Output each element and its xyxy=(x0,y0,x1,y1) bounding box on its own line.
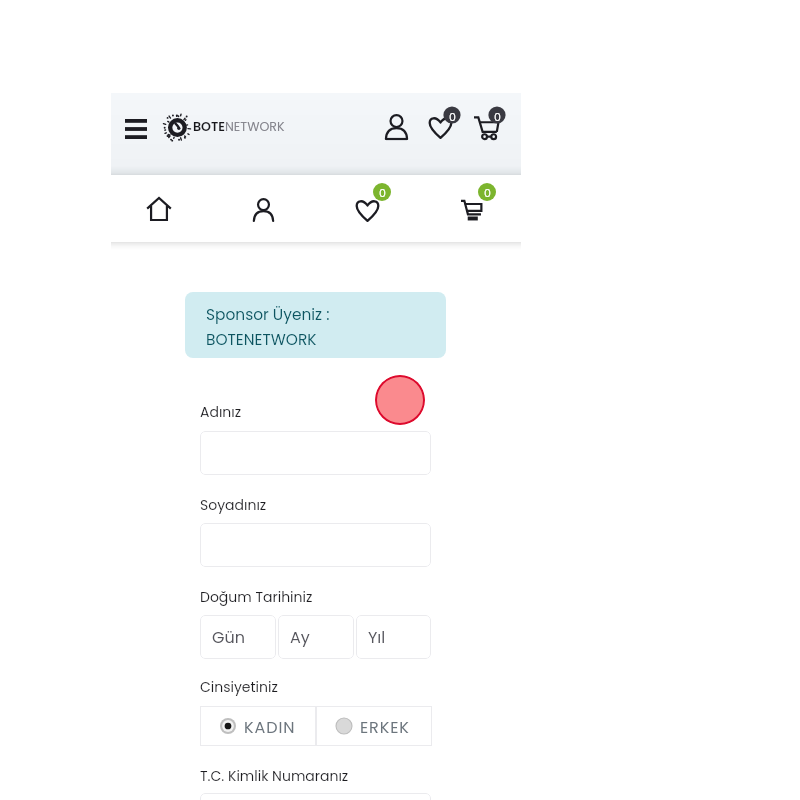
button[interactable] xyxy=(200,431,431,475)
button[interactable]: Favourites xyxy=(342,180,400,228)
staticText: 0 xyxy=(448,109,457,124)
staticText: NETWORK xyxy=(225,118,285,136)
staticText: 0 xyxy=(378,185,387,200)
button[interactable]: Cart xyxy=(465,95,509,139)
button[interactable]: Cinsiyetiniz xyxy=(200,677,278,697)
button[interactable]: Profile xyxy=(234,187,292,231)
staticText: KADIN xyxy=(244,716,296,738)
button[interactable] xyxy=(200,793,431,800)
button[interactable]: Gün xyxy=(200,615,276,659)
staticText: BOTE xyxy=(193,118,225,136)
button[interactable]: Cart xyxy=(447,180,505,228)
button[interactable]: Yıl xyxy=(356,615,431,659)
button[interactable]: Favourites xyxy=(420,95,464,139)
button[interactable] xyxy=(200,523,431,567)
button[interactable]: Doğum Tarihiniz xyxy=(200,587,313,607)
button[interactable]: Menu xyxy=(118,113,154,145)
staticText: Yıl xyxy=(368,626,386,648)
button[interactable]: Marker xyxy=(375,375,425,425)
button[interactable]: KADIN xyxy=(200,706,316,746)
button[interactable]: Account xyxy=(375,105,417,147)
staticText: 0 xyxy=(483,185,492,200)
button[interactable]: Adınız xyxy=(200,402,242,422)
staticText: Sponsor Üyeniz : xyxy=(206,304,330,326)
staticText: ERKEK xyxy=(360,716,410,738)
button[interactable]: Soyadınız xyxy=(200,495,267,515)
button[interactable]: ERKEK xyxy=(316,706,432,746)
button[interactable]: Home xyxy=(130,187,188,231)
button[interactable]: Sponsor Üyeniz : xyxy=(185,292,446,358)
button[interactable]: Ay xyxy=(278,615,354,659)
staticText: 0 xyxy=(493,109,502,124)
button[interactable]: BOTE xyxy=(164,112,285,142)
button[interactable]: T.C. Kimlik Numaranız xyxy=(200,766,349,786)
staticText: Ay xyxy=(290,626,310,648)
staticText: BOTENETWORK xyxy=(206,329,317,351)
staticText: Gün xyxy=(212,626,245,648)
